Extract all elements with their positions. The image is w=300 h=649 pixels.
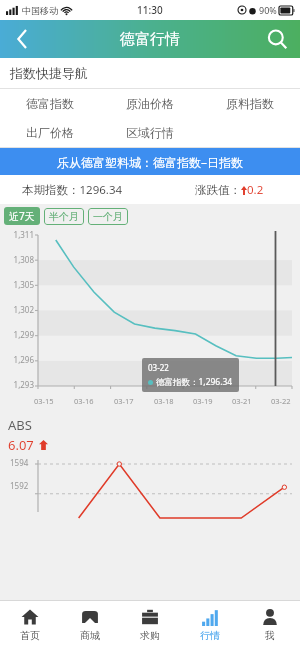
staticText: 11:30 (137, 3, 163, 17)
button[interactable]: 乐从德富塑料城：德富指数–日指数 (0, 148, 300, 175)
staticText: 德富指数：1,296.34 (156, 376, 233, 388)
button[interactable]: 近7天 (4, 207, 40, 225)
staticText: 1,308 (0, 254, 34, 265)
button[interactable]: Search (254, 20, 300, 58)
staticText: 中国移动 (22, 5, 58, 16)
staticText: 乐从德富塑料城：德富指数–日指数 (57, 154, 244, 170)
button[interactable]: 商城 (60, 601, 120, 649)
button[interactable]: 一个月 (88, 208, 128, 225)
staticText: 1,293 (0, 379, 34, 390)
staticText: 涨跌值： (195, 183, 241, 197)
staticText: 1,311 (0, 229, 34, 240)
staticText: 03-19 (193, 396, 213, 406)
button[interactable]: 半个月 (44, 208, 84, 225)
staticText: 半个月 (49, 210, 79, 223)
staticText: 原油价格 (126, 96, 174, 111)
staticText: 德富行情 (120, 30, 180, 49)
button[interactable]: 行情 (180, 601, 240, 649)
staticText: 03-21 (232, 396, 252, 406)
staticText: 03-17 (114, 396, 134, 406)
staticText: 1,305 (0, 279, 34, 290)
staticText: 一个月 (93, 210, 123, 223)
staticText: 德富指数 (26, 96, 74, 111)
button[interactable]: 求购 (120, 601, 180, 649)
staticText: 指数快捷导航 (10, 65, 88, 81)
staticText: 求购 (140, 629, 160, 642)
staticText: 本期指数：1296.34 (22, 182, 123, 198)
staticText: 近7天 (9, 209, 35, 223)
staticText: 1,302 (0, 304, 34, 315)
staticText: 03-15 (34, 396, 54, 406)
staticText: 6.07 (8, 436, 34, 454)
staticText: 03-18 (154, 396, 174, 406)
staticText: 1,296 (0, 354, 34, 365)
staticText: 90% (259, 4, 277, 16)
staticText: 03-22 (148, 362, 169, 373)
staticText: 原料指数 (226, 96, 274, 111)
staticText: 03-22 (271, 396, 291, 406)
button[interactable]: 区域行情 (100, 118, 200, 147)
button[interactable]: 德富指数 (0, 89, 100, 118)
staticText: 0.2 (247, 182, 264, 198)
staticText: 首页 (20, 629, 40, 642)
staticText: 1594 (10, 457, 29, 468)
staticText: 我 (265, 629, 275, 642)
button[interactable]: 原料指数 (200, 89, 300, 118)
staticText: 行情 (200, 629, 220, 642)
staticText: 商城 (80, 629, 100, 642)
button[interactable]: Back (0, 20, 44, 58)
button[interactable]: 出厂价格 (0, 118, 100, 147)
button[interactable]: 首页 (0, 601, 60, 649)
staticText: 1592 (10, 480, 29, 491)
staticText: 区域行情 (126, 125, 174, 140)
staticText: 1,299 (0, 329, 34, 340)
staticText: ABS (8, 416, 32, 434)
button[interactable]: 我 (240, 601, 300, 649)
button[interactable]: 原油价格 (100, 89, 200, 118)
staticText: 出厂价格 (26, 125, 74, 140)
staticText: 03-16 (74, 396, 94, 406)
